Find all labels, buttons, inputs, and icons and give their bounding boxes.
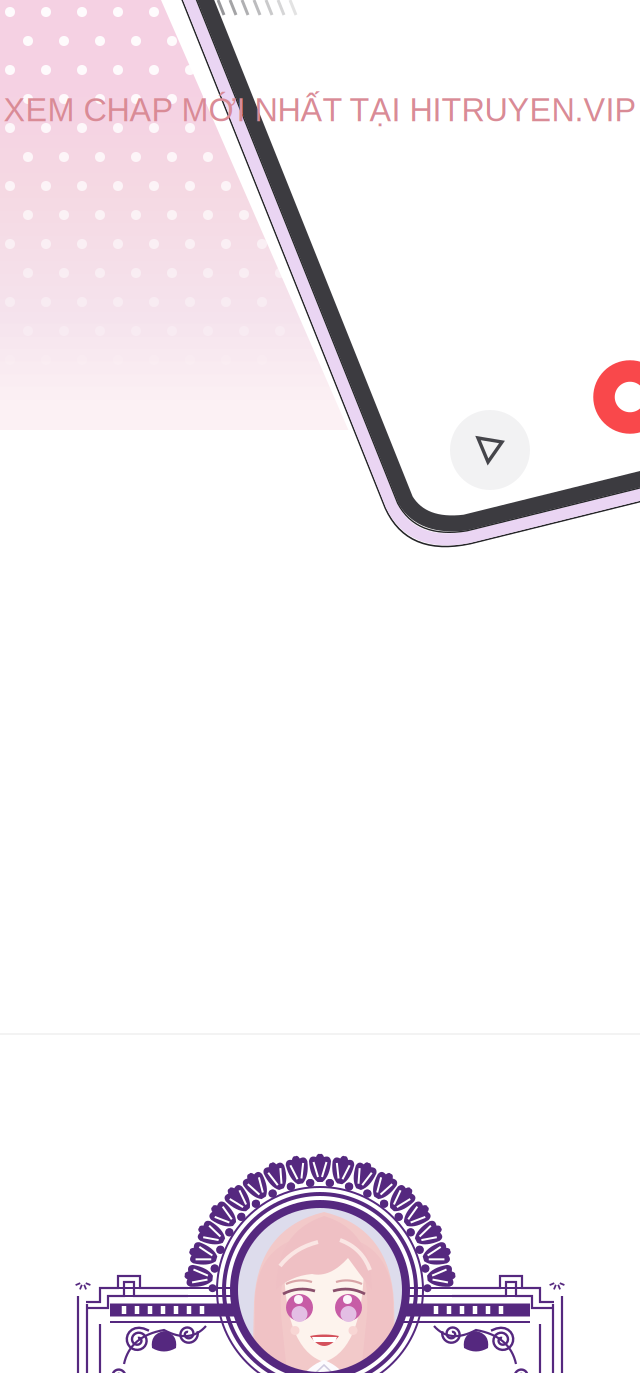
staticText: XEM CHAP MỚI NHẤT TẠI HITRUYEN.VIP [3,92,636,128]
button[interactable]: Send [450,410,530,490]
